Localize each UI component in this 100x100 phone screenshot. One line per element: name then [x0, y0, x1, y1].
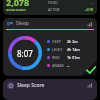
staticText: AWAKE	[52, 63, 67, 68]
staticText: 1h 51m	[67, 55, 95, 60]
staticText: +618	[85, 7, 94, 12]
staticText: --	[67, 63, 95, 68]
staticText: 8:07	[17, 48, 33, 59]
button[interactable]: Sleep Score	[3, 79, 97, 100]
button[interactable]: 2,078	[3, 0, 97, 15]
staticText: Sleep	[16, 20, 87, 27]
staticText: Sleep Score	[17, 82, 87, 89]
staticText: 4h 14m	[67, 47, 95, 52]
button[interactable]: Sleep	[3, 18, 97, 76]
staticText: DEEP	[52, 39, 67, 44]
staticText: REMAINING	[6, 8, 27, 11]
staticText: 2h 2m	[67, 39, 95, 44]
staticText: 2,078	[6, 0, 30, 8]
other: Sleep	[7, 21, 13, 27]
button[interactable]: Chart	[87, 21, 93, 27]
staticText: --	[91, 0, 94, 5]
button[interactable]: Chart	[87, 82, 93, 88]
staticText: ACTIVE	[48, 7, 60, 12]
staticText: LIGHT	[52, 47, 67, 52]
staticText: REM	[52, 55, 67, 60]
staticText: FOOD	[48, 0, 58, 5]
